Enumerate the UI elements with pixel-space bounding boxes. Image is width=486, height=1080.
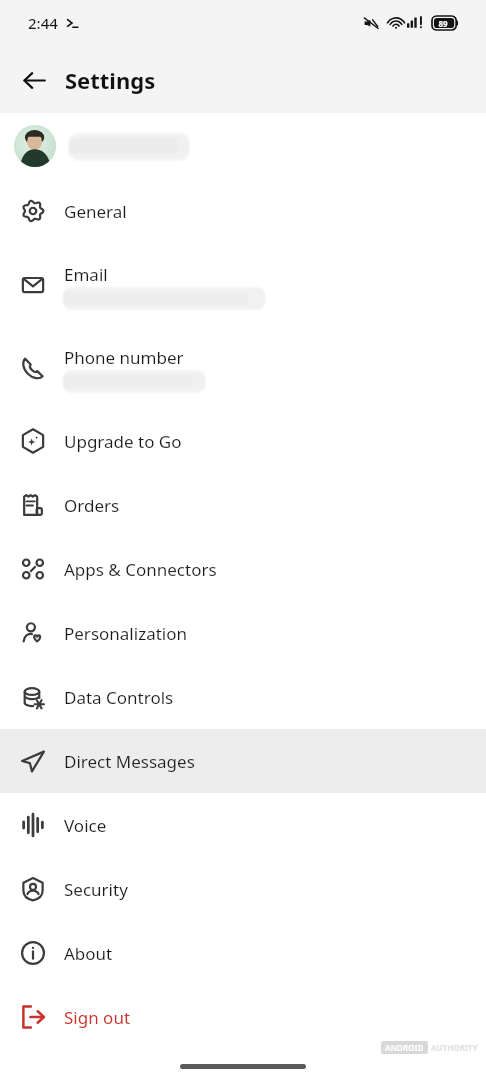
staticText: Personalization bbox=[64, 622, 187, 645]
staticText: 89 bbox=[438, 18, 448, 29]
button[interactable]: Security bbox=[0, 857, 486, 921]
button[interactable]: General bbox=[0, 179, 486, 243]
staticText: Phone number bbox=[64, 346, 184, 369]
staticText: General bbox=[64, 200, 127, 223]
staticText: Direct Messages bbox=[64, 750, 195, 773]
button[interactable]: Apps & Connectors bbox=[0, 537, 486, 601]
button[interactable]: Data Controls bbox=[0, 665, 486, 729]
button[interactable]: Orders bbox=[0, 473, 486, 537]
staticText: Security bbox=[64, 878, 128, 901]
button[interactable]: Phone number bbox=[0, 326, 486, 409]
button[interactable]: Upgrade to Go bbox=[0, 409, 486, 473]
staticText: AUTHORITY bbox=[431, 1042, 478, 1053]
button[interactable]: Back bbox=[12, 58, 56, 102]
button[interactable]: Email bbox=[0, 243, 486, 326]
staticText: Orders bbox=[64, 494, 120, 517]
staticText: 2:44 bbox=[28, 13, 58, 33]
button[interactable]: About bbox=[0, 921, 486, 985]
staticText: ANDROID bbox=[385, 1042, 424, 1053]
button[interactable]: Voice bbox=[0, 793, 486, 857]
button[interactable]: Personalization bbox=[0, 601, 486, 665]
staticText: Apps & Connectors bbox=[64, 558, 217, 581]
staticText: Settings bbox=[65, 65, 156, 95]
staticText: About bbox=[64, 942, 113, 965]
staticText: Data Controls bbox=[64, 686, 174, 709]
staticText: Sign out bbox=[64, 1006, 131, 1029]
button[interactable] bbox=[0, 113, 486, 179]
staticText: Email bbox=[64, 263, 108, 286]
staticText: Upgrade to Go bbox=[64, 430, 182, 453]
button[interactable]: Sign out bbox=[0, 985, 486, 1049]
button[interactable]: Direct Messages bbox=[0, 729, 486, 793]
staticText: Voice bbox=[64, 814, 107, 837]
